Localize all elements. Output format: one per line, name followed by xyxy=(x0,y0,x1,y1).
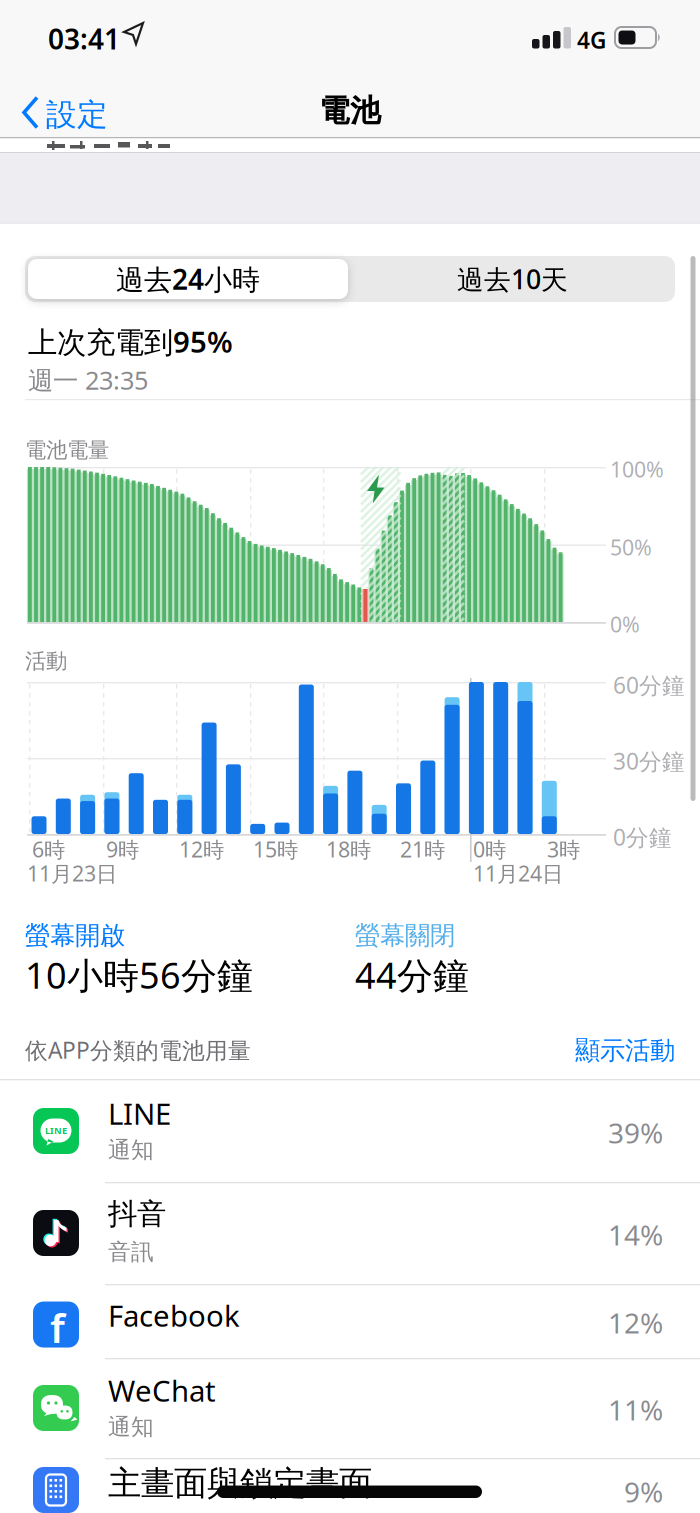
staticText: 0時 xyxy=(473,835,506,863)
staticText: 12時 xyxy=(179,835,224,863)
staticText: 依APP分類的電池用量 xyxy=(25,1035,251,1065)
staticText: 9時 xyxy=(106,835,139,863)
staticText: 14% xyxy=(608,1216,663,1253)
staticText: 4G xyxy=(577,25,606,55)
staticText: 顯示活動 xyxy=(575,1035,675,1066)
staticText: 週一 23:35 xyxy=(28,363,148,397)
staticText: 電池 xyxy=(319,92,381,130)
staticText: 30分鐘 xyxy=(613,746,685,776)
staticText: 21時 xyxy=(400,835,445,863)
staticText: 3時 xyxy=(547,835,580,863)
staticText: 螢幕開啟 xyxy=(25,920,125,951)
staticText: 12% xyxy=(608,1304,663,1341)
staticText: 過去10天 xyxy=(457,261,568,297)
staticText: 03:41 xyxy=(48,20,120,57)
staticText: 音訊 xyxy=(108,1238,154,1266)
staticText: 0分鐘 xyxy=(613,822,672,852)
staticText: 上次充電到95% xyxy=(28,322,233,361)
staticText: 0% xyxy=(610,610,640,638)
staticText: LINE xyxy=(108,1094,171,1133)
staticText: 電池電量 xyxy=(25,437,109,463)
staticText: 50% xyxy=(610,533,652,561)
button[interactable]: LINE xyxy=(0,1080,700,1182)
staticText: Facebook xyxy=(108,1296,240,1335)
button[interactable]: 顯示活動 xyxy=(475,1035,675,1066)
button[interactable]: 主畫面與鎖定畫面 xyxy=(0,1458,700,1513)
staticText: 活動 xyxy=(25,648,67,674)
button[interactable]: WeChat xyxy=(0,1358,700,1458)
staticText: 11月24日 xyxy=(473,859,563,887)
staticText: 15時 xyxy=(253,835,298,863)
staticText: f xyxy=(50,1301,65,1354)
staticText: 9% xyxy=(624,1473,663,1510)
staticText: 通知 xyxy=(108,1413,154,1441)
staticText: 6時 xyxy=(32,835,65,863)
staticText: 過去24小時 xyxy=(116,260,260,298)
button[interactable]: 抖音 xyxy=(0,1182,700,1284)
staticText: 39% xyxy=(608,1114,663,1151)
staticText: 11月23日 xyxy=(27,859,117,887)
staticText: 抖音 xyxy=(108,1196,166,1232)
staticText: 10小時56分鐘 xyxy=(25,951,253,999)
staticText: 螢幕關閉 xyxy=(355,920,455,951)
button[interactable]: 設定 xyxy=(0,0,160,138)
staticText: 主畫面與鎖定畫面 xyxy=(108,1463,372,1504)
staticText: 44分鐘 xyxy=(355,951,469,999)
button[interactable]: f xyxy=(0,1284,700,1358)
staticText: 60分鐘 xyxy=(613,670,685,700)
staticText: 18時 xyxy=(326,835,371,863)
button[interactable]: 過去24小時 xyxy=(28,259,348,299)
staticText: 通知 xyxy=(108,1136,154,1164)
staticText: 100% xyxy=(610,455,664,483)
staticText: WeChat xyxy=(108,1371,216,1410)
button[interactable]: 過去10天 xyxy=(350,256,675,302)
staticText: LINE xyxy=(45,1124,67,1137)
staticText: 11% xyxy=(608,1391,663,1428)
staticText: 設定 xyxy=(46,96,108,134)
